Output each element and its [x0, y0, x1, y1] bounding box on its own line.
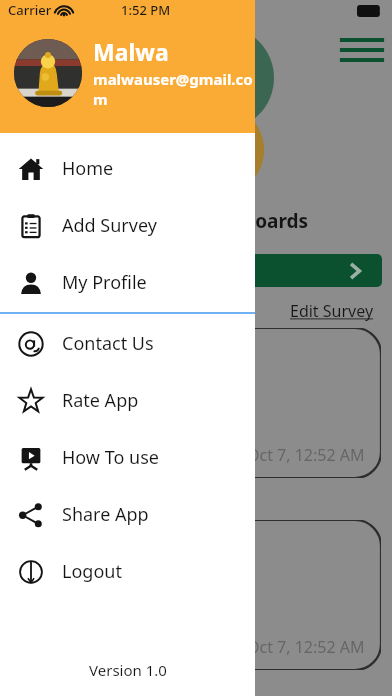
button[interactable]: Contact Us	[0, 315, 255, 372]
staticText: Carrier	[8, 1, 52, 19]
staticText: Malwa	[93, 36, 169, 67]
button[interactable]: My Profile	[0, 254, 255, 311]
button[interactable]: Malwa	[14, 36, 255, 109]
staticText: Contact Us	[62, 331, 154, 356]
button[interactable]	[140, 254, 382, 287]
button[interactable]: Oct 7, 12:52 AM	[0, 520, 381, 670]
staticText: Add Survey	[62, 213, 157, 238]
staticText: Logout	[62, 559, 122, 584]
button[interactable]: How To use	[0, 429, 255, 486]
staticText: Oct 7, 12:52 AM	[247, 636, 365, 658]
staticText: 1:52 PM	[121, 1, 171, 19]
staticText: Version 1.0	[89, 660, 167, 680]
button[interactable]: Open navigation menu	[340, 28, 384, 72]
button[interactable]: Oct 7, 12:52 AM	[0, 328, 381, 478]
staticText: Oct 7, 12:52 AM	[247, 444, 365, 466]
staticText: Rate App	[62, 388, 139, 413]
button[interactable]: Add Survey	[0, 197, 255, 254]
staticText: Home	[62, 156, 114, 181]
staticText: Share App	[62, 502, 149, 527]
button[interactable]: Home	[0, 140, 255, 197]
button[interactable]: Logout	[0, 543, 255, 600]
button[interactable]: Rate App	[0, 372, 255, 429]
staticText: My Profile	[62, 270, 147, 295]
staticText: Dashboards	[196, 208, 309, 234]
button[interactable]: Edit Survey	[290, 300, 374, 322]
staticText: malwauser@gmail.com	[93, 69, 255, 109]
button[interactable]: Share App	[0, 486, 255, 543]
staticText: How To use	[62, 445, 159, 470]
